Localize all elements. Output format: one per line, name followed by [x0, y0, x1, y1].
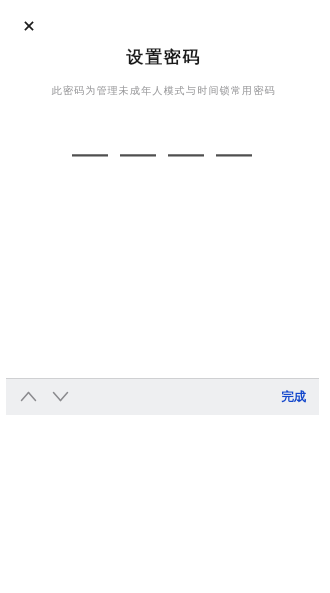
- button[interactable]: Next field: [44, 379, 76, 414]
- button[interactable]: 完成: [273, 383, 314, 411]
- button[interactable]: PIN digit 1: [72, 148, 108, 164]
- button[interactable]: Previous field: [12, 379, 44, 414]
- button[interactable]: PIN digit 3: [168, 148, 204, 164]
- button[interactable]: PIN digit 2: [120, 148, 156, 164]
- staticText: 完成: [281, 389, 306, 405]
- button[interactable]: Close: [12, 9, 45, 42]
- staticText: 此密码为管理未成年人模式与时间锁常用密码: [51, 84, 275, 97]
- button[interactable]: PIN digit 4: [216, 148, 252, 164]
- staticText: 设置密码: [126, 47, 201, 68]
